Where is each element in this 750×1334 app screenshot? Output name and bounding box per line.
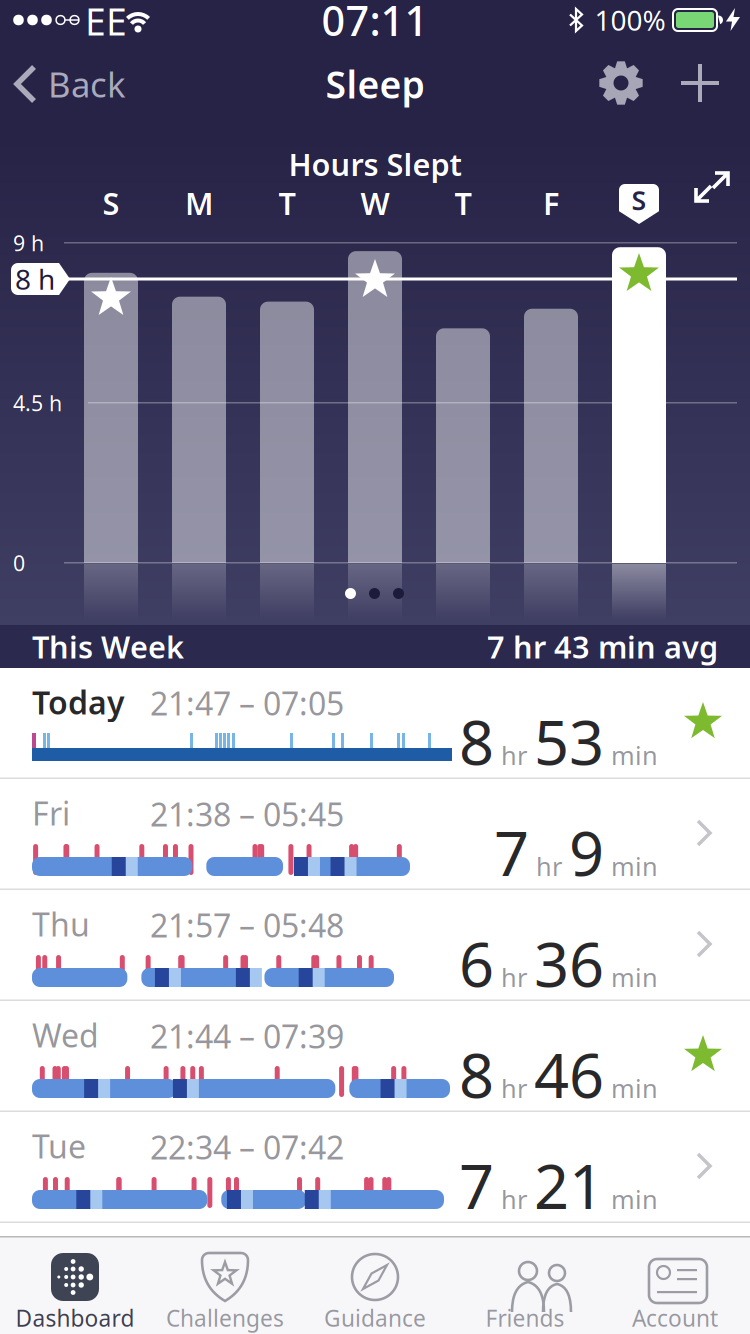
staticText: EE <box>85 0 127 46</box>
staticText: hr <box>501 1182 527 1216</box>
staticText: F <box>543 183 559 223</box>
staticText: 100% <box>594 1 665 39</box>
staticText: 21:57 – 05:48 <box>150 904 344 946</box>
staticText: 8 <box>459 701 494 782</box>
button[interactable]: Settings <box>597 59 645 107</box>
staticText: 21:44 – 07:39 <box>150 1015 344 1057</box>
button[interactable]: Thu <box>0 890 750 1001</box>
button[interactable]: Account <box>600 1238 750 1334</box>
staticText: 21:38 – 05:45 <box>150 793 344 835</box>
staticText: T <box>454 183 471 223</box>
staticText: Tue <box>32 1125 86 1167</box>
staticText: 36 <box>534 923 604 1004</box>
staticText: 21 <box>534 1145 604 1226</box>
staticText: W <box>360 183 389 223</box>
staticText: Dashboard <box>15 1303 134 1333</box>
staticText: 9 h <box>13 229 44 257</box>
staticText: S <box>631 182 646 218</box>
button[interactable]: Back <box>14 59 164 109</box>
staticText: 46 <box>534 1034 604 1115</box>
staticText: Hours Slept <box>288 144 461 184</box>
staticText: Wed <box>32 1014 99 1056</box>
staticText: 9 <box>569 812 604 893</box>
staticText: Today <box>32 681 125 723</box>
staticText: min <box>611 960 658 994</box>
staticText: Sleep <box>325 59 424 109</box>
staticText: 7 <box>459 1145 494 1226</box>
staticText: 8 h <box>15 260 55 298</box>
staticText: 6 <box>459 923 494 1004</box>
staticText: min <box>611 849 658 883</box>
staticText: 21:47 – 07:05 <box>150 682 344 724</box>
staticText: hr <box>536 849 562 883</box>
staticText: M <box>185 183 213 223</box>
staticText: Guidance <box>324 1303 426 1333</box>
staticText: T <box>278 183 295 223</box>
staticText: hr <box>501 738 527 772</box>
button[interactable]: Dashboard <box>0 1238 150 1334</box>
staticText: min <box>611 738 658 772</box>
button[interactable]: Today <box>0 668 750 779</box>
staticText: hr <box>501 960 527 994</box>
staticText: Thu <box>32 903 90 945</box>
staticText: min <box>611 1071 658 1105</box>
staticText: 22:34 – 07:42 <box>150 1126 344 1168</box>
button[interactable]: Expand <box>696 169 732 205</box>
staticText: 7 <box>494 812 529 893</box>
staticText: 0 <box>13 549 25 577</box>
staticText: Challenges <box>166 1303 284 1333</box>
staticText: This Week <box>32 626 184 667</box>
staticText: hr <box>501 1071 527 1105</box>
button[interactable]: Challenges <box>150 1238 300 1334</box>
staticText: 7 hr 43 min avg <box>487 626 718 667</box>
staticText: min <box>611 1182 658 1216</box>
button[interactable]: Friends <box>450 1238 600 1334</box>
staticText: Fri <box>32 792 70 834</box>
button[interactable]: Wed <box>0 1001 750 1112</box>
button[interactable]: Fri <box>0 779 750 890</box>
staticText: 8 <box>459 1034 494 1115</box>
staticText: Friends <box>485 1303 564 1333</box>
staticText: Back <box>48 61 126 107</box>
button[interactable]: Guidance <box>300 1238 450 1334</box>
button[interactable]: Tue <box>0 1112 750 1223</box>
staticText: 53 <box>534 701 604 782</box>
staticText: 4.5 h <box>13 389 62 417</box>
button[interactable]: Add <box>681 64 719 102</box>
staticText: Account <box>632 1303 718 1333</box>
staticText: 07:11 <box>321 0 428 47</box>
staticText: S <box>102 183 119 223</box>
